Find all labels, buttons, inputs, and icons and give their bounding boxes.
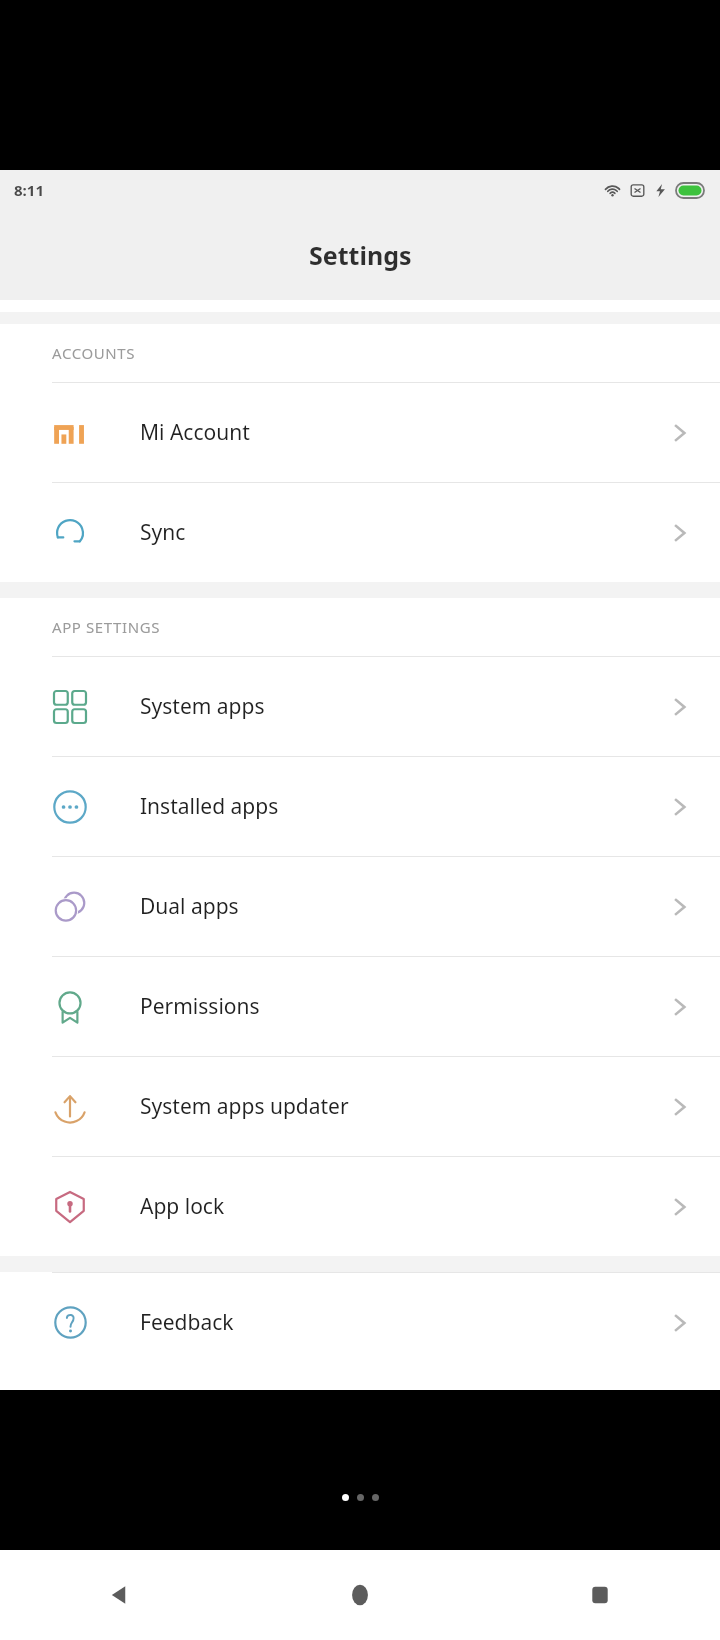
- staticText: Permissions: [140, 992, 260, 1021]
- staticText: Installed apps: [140, 792, 279, 821]
- staticText: System apps: [140, 692, 265, 721]
- button[interactable]: Home: [240, 1550, 480, 1640]
- staticText: Mi Account: [140, 418, 250, 447]
- staticText: 8:11: [14, 180, 44, 200]
- button[interactable]: Sync: [0, 483, 720, 582]
- staticText: Sync: [140, 518, 186, 547]
- button[interactable]: Mi Account: [0, 383, 720, 482]
- staticText: Dual apps: [140, 892, 239, 921]
- button[interactable]: Installed apps: [0, 757, 720, 856]
- button[interactable]: System apps updater: [0, 1057, 720, 1156]
- staticText: APP SETTINGS: [52, 617, 161, 637]
- staticText: Feedback: [140, 1308, 234, 1337]
- staticText: App lock: [140, 1192, 225, 1221]
- staticText: Settings: [309, 238, 412, 272]
- staticText: ACCOUNTS: [52, 343, 136, 363]
- button[interactable]: System apps: [0, 657, 720, 756]
- button[interactable]: Feedback: [0, 1273, 720, 1372]
- button[interactable]: Recent apps: [480, 1550, 720, 1640]
- button[interactable]: Permissions: [0, 957, 720, 1056]
- button[interactable]: App lock: [0, 1157, 720, 1256]
- button[interactable]: Back: [0, 1550, 240, 1640]
- button[interactable]: Dual apps: [0, 857, 720, 956]
- staticText: System apps updater: [140, 1092, 349, 1121]
